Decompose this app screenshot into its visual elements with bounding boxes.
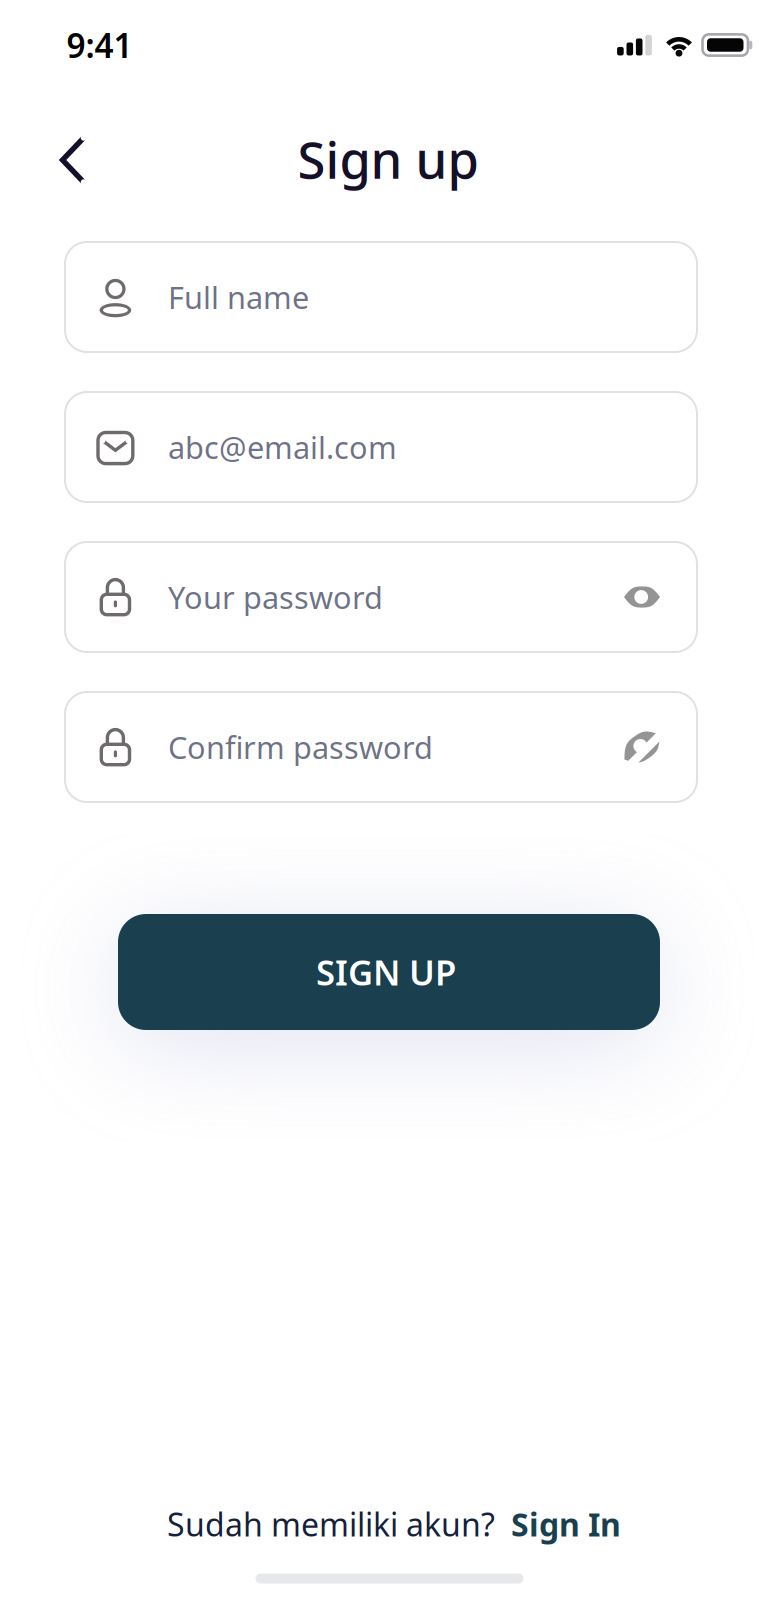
button[interactable]: SIGN UP xyxy=(118,914,660,1030)
staticText: 9:41 xyxy=(66,23,132,67)
button[interactable]: abc@email.com xyxy=(65,392,697,502)
staticText: Sudah memiliki akun? xyxy=(167,1503,511,1545)
button[interactable]: Back xyxy=(37,124,109,196)
staticText: abc@email.com xyxy=(168,427,397,467)
staticText: Sign up xyxy=(297,125,478,193)
button[interactable]: Confirm password xyxy=(65,692,697,802)
button[interactable]: Sudah memiliki akun? xyxy=(167,1503,621,1545)
staticText: Full name xyxy=(168,277,309,317)
button[interactable]: Your password xyxy=(65,542,697,652)
staticText: SIGN UP xyxy=(316,949,456,995)
button[interactable]: Show password xyxy=(616,575,668,619)
staticText: Confirm password xyxy=(168,727,433,767)
button[interactable]: Hide password xyxy=(612,717,672,777)
staticText: Sign In xyxy=(511,1503,621,1545)
button[interactable]: Full name xyxy=(65,242,697,352)
staticText: Your password xyxy=(168,577,383,617)
